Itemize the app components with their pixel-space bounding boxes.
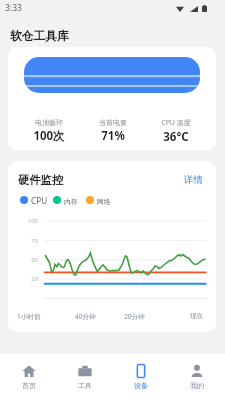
staticText: 设备: [134, 381, 148, 390]
other: 首页: [22, 364, 36, 378]
staticText: 100次: [33, 128, 65, 144]
staticText: 当前电量: [99, 118, 127, 127]
staticText: 1小时前: [17, 312, 41, 321]
other: 我的: [190, 364, 204, 378]
staticText: 25: [26, 275, 38, 283]
other: 工具: [78, 364, 92, 378]
button[interactable]: 我的: [169, 354, 225, 400]
staticText: 100: [26, 217, 38, 225]
staticText: 36°C: [163, 129, 189, 145]
staticText: 网络: [97, 197, 111, 206]
staticText: 详情: [184, 174, 203, 186]
button[interactable]: 电池循环: [8, 47, 216, 150]
button[interactable]: 设备: [113, 354, 169, 400]
staticText: 现在: [190, 312, 204, 320]
staticText: 内存: [64, 197, 78, 206]
staticText: 工具: [78, 381, 92, 390]
staticText: 硬件监控: [18, 173, 64, 187]
staticText: 20分钟: [124, 312, 145, 321]
button[interactable]: CPU: [20, 192, 37, 203]
staticText: 首页: [22, 381, 36, 390]
staticText: 71%: [101, 128, 125, 144]
staticText: 50: [26, 256, 38, 264]
button[interactable]: 网络: [86, 192, 100, 201]
staticText: 75: [26, 237, 38, 245]
button[interactable]: 内存: [53, 192, 67, 201]
button[interactable]: 首页: [0, 354, 57, 400]
staticText: 我的: [190, 381, 204, 390]
staticText: CPU: [31, 195, 48, 206]
staticText: 电池循环: [35, 118, 63, 127]
staticText: 40分钟: [75, 312, 96, 321]
other: 设备: [134, 364, 148, 378]
staticText: 3:33: [5, 2, 22, 14]
button[interactable]: 工具: [57, 354, 113, 400]
staticText: 软仓工具库: [10, 29, 69, 44]
button[interactable]: 详情: [184, 174, 203, 186]
staticText: CPU 温度: [161, 118, 191, 128]
